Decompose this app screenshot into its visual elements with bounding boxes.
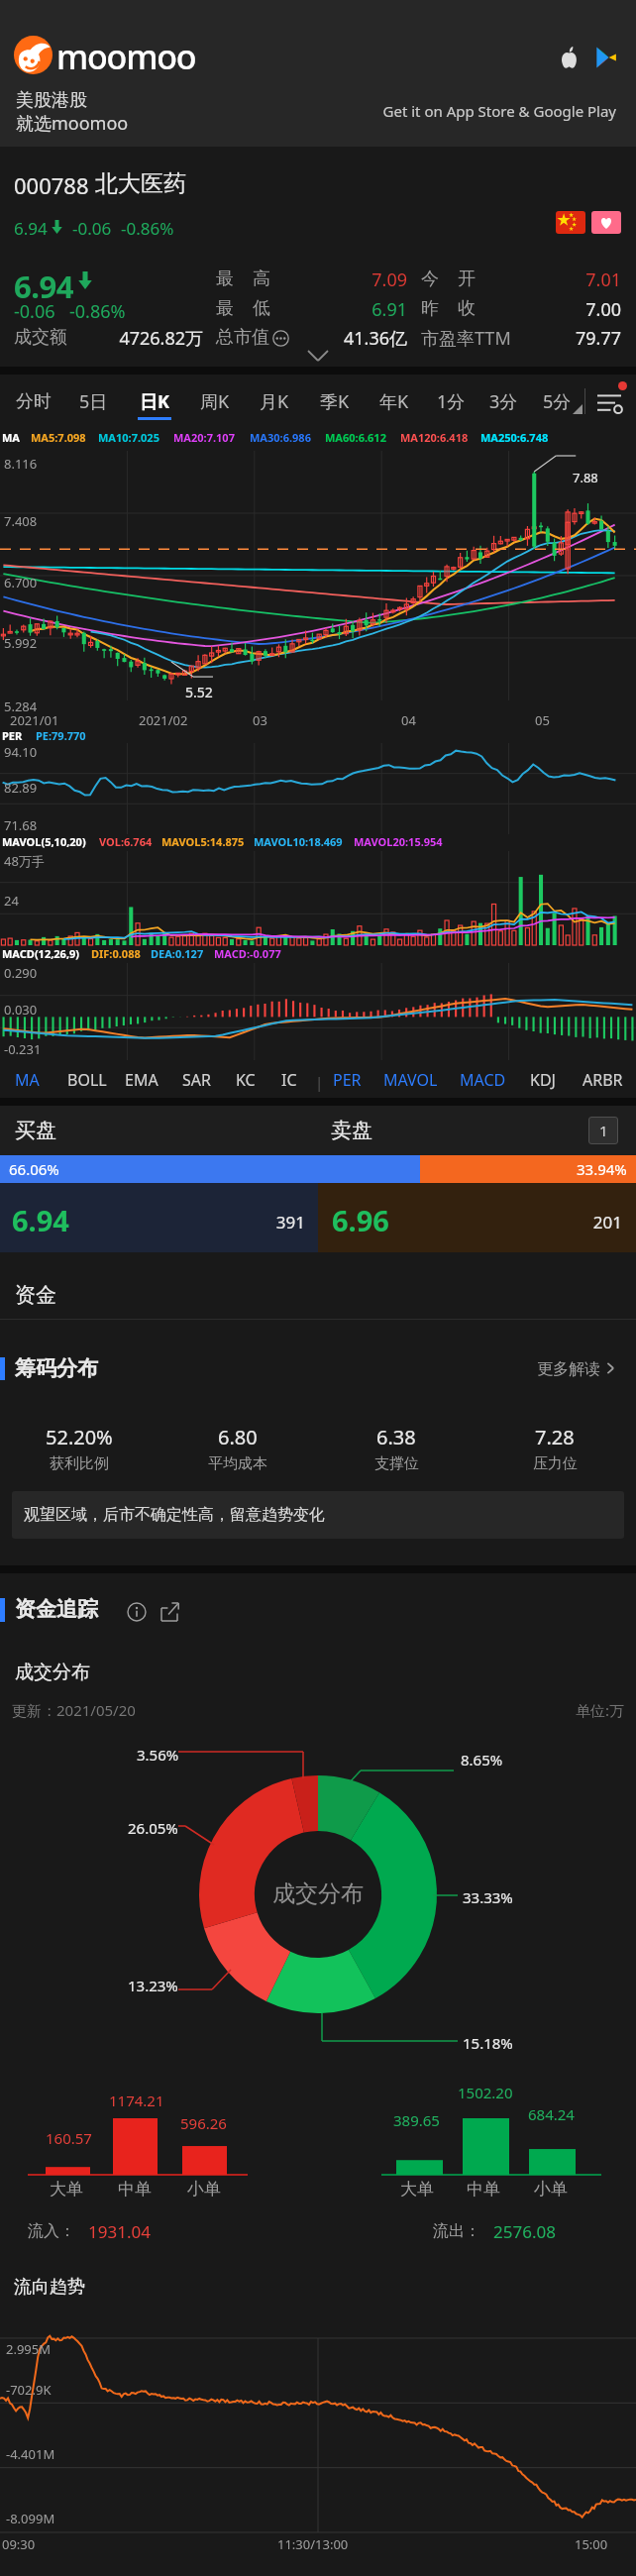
button[interactable]: 5日 bbox=[63, 375, 123, 428]
staticText: 平均成本 bbox=[208, 1454, 267, 1473]
staticText: 82.89 bbox=[4, 779, 38, 797]
staticText: 7.88 bbox=[573, 469, 598, 486]
staticText: 2021/02 bbox=[139, 711, 188, 728]
button[interactable]: EMA bbox=[112, 1062, 171, 1098]
button[interactable]: KC bbox=[216, 1062, 275, 1098]
staticText: SAR bbox=[182, 1069, 211, 1091]
button[interactable]: Share bbox=[159, 1602, 179, 1622]
staticText: 买盘 bbox=[15, 1118, 56, 1143]
staticText: 71.68 bbox=[4, 816, 38, 834]
button[interactable]: KDJ bbox=[513, 1062, 573, 1098]
staticText: 389.65 bbox=[393, 2110, 440, 2130]
button[interactable]: BOLL bbox=[57, 1062, 117, 1098]
button[interactable]: Chart settings bbox=[594, 387, 624, 417]
button[interactable]: App Store bbox=[560, 47, 579, 68]
staticText: PER bbox=[333, 1069, 362, 1091]
staticText: 流出： bbox=[433, 2221, 480, 2241]
staticText: -4.401M bbox=[6, 2445, 55, 2463]
button[interactable]: Expand details bbox=[308, 351, 328, 361]
button[interactable]: MAVOL bbox=[380, 1062, 440, 1098]
staticText: IC bbox=[281, 1069, 297, 1091]
staticText: MA60:6.612 bbox=[325, 430, 386, 445]
button[interactable]: 周K bbox=[185, 375, 245, 428]
button[interactable]: moomoo bbox=[0, 0, 636, 147]
button[interactable]: SAR bbox=[166, 1062, 226, 1098]
button[interactable]: ARBR bbox=[573, 1062, 632, 1098]
staticText: 6.700 bbox=[4, 574, 38, 591]
staticText: 2576.08 bbox=[493, 2220, 556, 2243]
staticText: 33.33% bbox=[463, 1887, 513, 1907]
staticText: EMA bbox=[125, 1069, 159, 1091]
staticText: MA120:6.418 bbox=[400, 430, 469, 445]
staticText: 美股港股 bbox=[16, 89, 87, 112]
button[interactable]: 季K bbox=[305, 375, 365, 428]
staticText: MA10:7.025 bbox=[98, 430, 159, 445]
button[interactable]: 年K bbox=[365, 375, 424, 428]
button[interactable]: 6.94 bbox=[0, 1183, 318, 1252]
staticText: -8.099M bbox=[6, 2510, 55, 2527]
staticText: 更新：2021/05/20 bbox=[12, 1700, 136, 1720]
staticText: 391 bbox=[216, 1211, 305, 1234]
button[interactable]: IC bbox=[260, 1062, 319, 1098]
button[interactable]: 6.96 bbox=[318, 1183, 636, 1252]
staticText: 66.06% bbox=[9, 1159, 59, 1179]
button[interactable]: 3分 bbox=[474, 375, 533, 428]
staticText: 卖盘 bbox=[331, 1118, 372, 1143]
button[interactable]: 1分 bbox=[421, 375, 480, 428]
staticText: 成交分布 bbox=[272, 1879, 364, 1908]
button[interactable]: Info bbox=[127, 1602, 147, 1622]
staticText: 更多解读 bbox=[481, 1359, 600, 1379]
button[interactable]: MA bbox=[0, 1062, 56, 1098]
staticText: 市盈率TTM bbox=[421, 326, 511, 351]
staticText: 41.36亿 bbox=[298, 326, 407, 351]
staticText: -0.86% bbox=[121, 217, 174, 240]
staticText: 13.23% bbox=[128, 1976, 178, 1995]
button[interactable]: PER bbox=[317, 1062, 376, 1098]
button[interactable]: Google Play bbox=[595, 47, 617, 68]
staticText: MA30:6.986 bbox=[250, 430, 311, 445]
staticText: 年K bbox=[379, 389, 409, 414]
staticText: 大单 bbox=[400, 2179, 434, 2200]
staticText: ARBR bbox=[583, 1069, 623, 1091]
staticText: 1502.20 bbox=[458, 2083, 513, 2102]
staticText: 收 bbox=[458, 297, 476, 320]
staticText: MACD:-0.077 bbox=[214, 946, 281, 961]
staticText: 09:30 bbox=[2, 2535, 36, 2553]
staticText: 获利比例 bbox=[50, 1454, 109, 1473]
button[interactable]: 1 bbox=[588, 1117, 618, 1144]
button[interactable]: 筹码分布 bbox=[0, 1353, 636, 1385]
staticText: MA20:7.107 bbox=[173, 430, 235, 445]
staticText: 5.284 bbox=[4, 698, 38, 715]
button[interactable]: 月K bbox=[245, 375, 304, 428]
staticText: 6.96 bbox=[332, 1201, 389, 1239]
button[interactable]: 5分 bbox=[527, 375, 586, 428]
button[interactable]: MACD bbox=[453, 1062, 512, 1098]
staticText: 5日 bbox=[79, 389, 108, 414]
staticText: 观望区域，后市不确定性高，留意趋势变化 bbox=[24, 1505, 325, 1525]
staticText: 最 bbox=[216, 268, 234, 290]
button[interactable]: Add to favorites bbox=[591, 211, 621, 234]
button[interactable]: 日K bbox=[125, 375, 184, 428]
staticText: DIF:0.088 bbox=[91, 946, 141, 961]
staticText: 4726.82万 bbox=[45, 326, 203, 351]
staticText: 15.18% bbox=[463, 2033, 513, 2053]
staticText: Get it on App Store & Google Play bbox=[319, 101, 616, 121]
staticText: 季K bbox=[320, 389, 350, 414]
staticText: 成交分布 bbox=[15, 1661, 90, 1684]
staticText: VOL:6.764 bbox=[99, 834, 153, 849]
staticText: 7.28 bbox=[535, 1424, 575, 1450]
staticText: 压力位 bbox=[533, 1454, 578, 1473]
staticText: | bbox=[315, 1072, 324, 1092]
staticText: 6.94 bbox=[14, 217, 48, 240]
staticText: 6.91 bbox=[318, 297, 407, 322]
staticText: 79.77 bbox=[532, 326, 621, 351]
button[interactable]: More info bbox=[272, 330, 289, 347]
staticText: 201 bbox=[533, 1211, 622, 1234]
staticText: 7.09 bbox=[318, 268, 407, 292]
staticText: 支撑位 bbox=[374, 1454, 419, 1473]
staticText: 流向趋势 bbox=[14, 2276, 85, 2299]
staticText: 24 bbox=[4, 892, 19, 910]
button[interactable]: 分时 bbox=[4, 375, 63, 428]
staticText: 小单 bbox=[534, 2179, 568, 2200]
staticText: 中单 bbox=[118, 2179, 152, 2200]
